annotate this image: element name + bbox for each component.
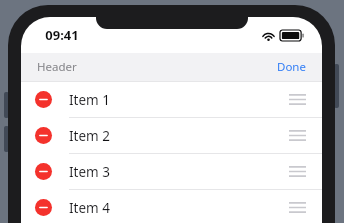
button[interactable]: Reorder Item 1 [289,91,306,108]
button[interactable]: Delete Item 2 [21,118,322,153]
button[interactable]: Delete Item 3 [35,163,52,180]
button[interactable]: Reorder Item 4 [289,199,306,216]
staticText: Item 4 [69,199,289,217]
button[interactable]: Delete Item 2 [35,127,52,144]
staticText: Item 3 [69,163,289,181]
button[interactable]: Delete Item 4 [35,199,52,216]
button[interactable]: Delete Item 1 [21,82,322,117]
button[interactable]: Reorder Item 2 [289,127,306,144]
staticText: Item 2 [69,127,289,145]
staticText: 09:41 [45,26,79,44]
button[interactable]: Done [261,55,322,79]
button[interactable]: Delete Item 1 [35,91,52,108]
button[interactable]: Delete Item 4 [21,190,322,223]
staticText: Done [277,59,306,75]
button[interactable]: Reorder Item 3 [289,163,306,180]
staticText: Header [37,59,77,75]
button[interactable]: Delete Item 3 [21,154,322,189]
staticText: Item 1 [69,91,289,109]
